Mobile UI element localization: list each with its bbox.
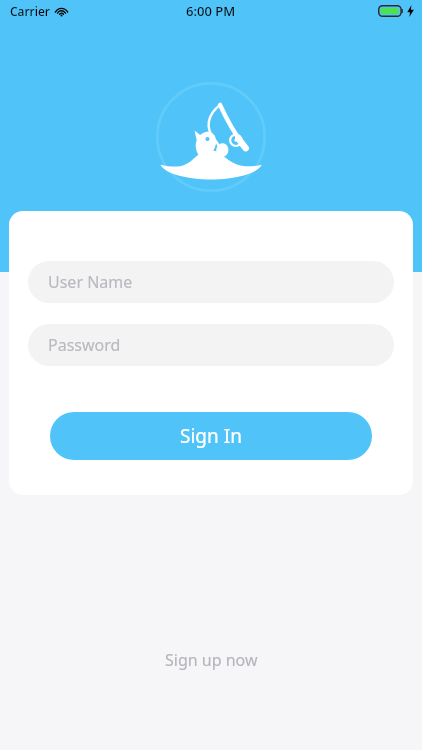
staticText: 6:00 PM (186, 2, 236, 20)
button[interactable]: Sign In (50, 412, 372, 460)
other: Battery charging (378, 5, 404, 17)
other: Wi-Fi signal (55, 5, 68, 18)
button[interactable]: Sign up now (151, 643, 272, 677)
staticText: User Name (48, 271, 133, 293)
staticText: Sign In (180, 423, 242, 449)
button[interactable]: User Name (28, 261, 394, 303)
staticText: Sign up now (165, 649, 258, 671)
staticText: Password (48, 334, 121, 356)
staticText: Carrier (10, 3, 50, 19)
other: Fishing app logo (156, 82, 266, 192)
button[interactable]: Password (28, 324, 394, 366)
